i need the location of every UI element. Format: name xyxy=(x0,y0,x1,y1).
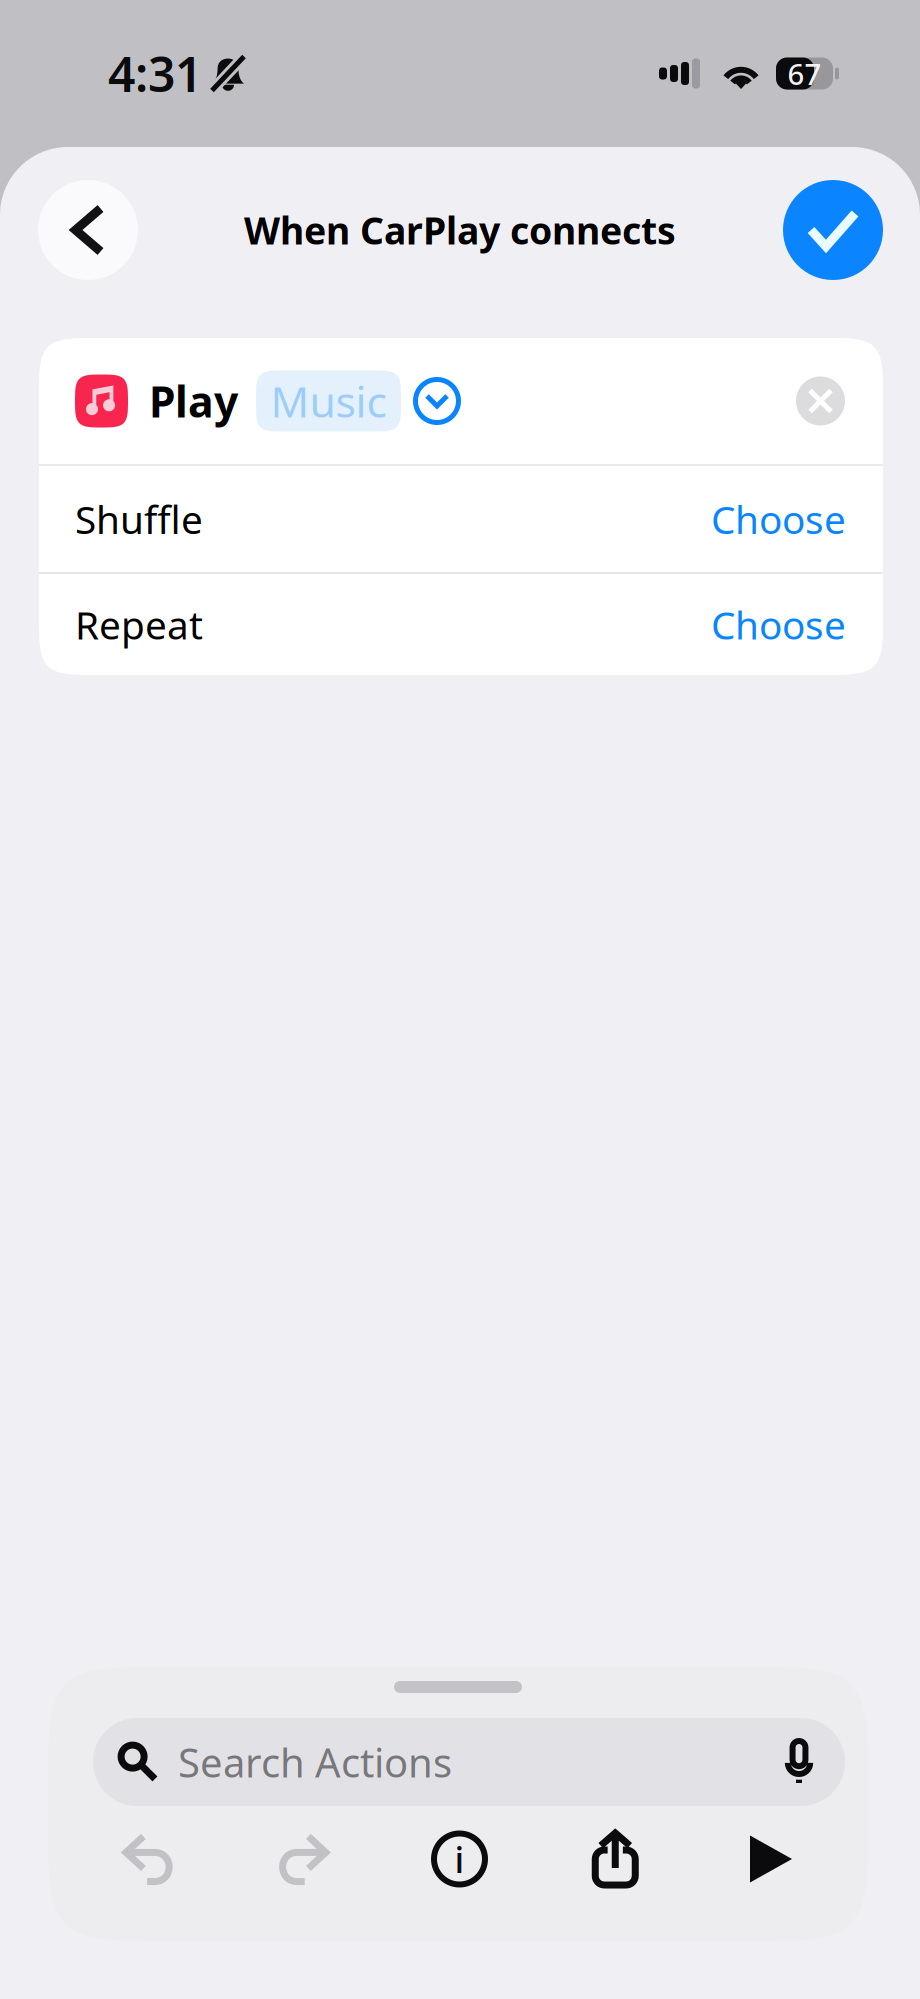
button[interactable]: Shuffle xyxy=(39,466,883,572)
staticText: Shuffle xyxy=(75,493,203,545)
staticText: Choose xyxy=(711,599,846,650)
staticText: Search Actions xyxy=(178,1735,452,1788)
button[interactable]: Share xyxy=(561,1814,669,1904)
staticText: Music xyxy=(270,373,386,429)
button[interactable]: Details xyxy=(405,1814,513,1904)
staticText: Play xyxy=(149,373,238,429)
staticText: 67 xyxy=(787,54,821,93)
button[interactable]: Redo xyxy=(250,1814,358,1904)
button[interactable]: Show more options xyxy=(413,377,461,425)
button[interactable]: Undo xyxy=(94,1814,202,1904)
button[interactable]: Done xyxy=(783,180,883,280)
staticText: Choose xyxy=(711,493,846,545)
staticText: Repeat xyxy=(75,599,203,650)
staticText: When CarPlay connects xyxy=(244,205,676,255)
staticText: i xyxy=(454,1835,464,1883)
button[interactable]: Back xyxy=(38,180,138,280)
button[interactable]: Repeat xyxy=(39,574,883,675)
staticText: 4:31 xyxy=(108,42,202,105)
button[interactable]: Remove action xyxy=(796,376,845,425)
button[interactable]: Run xyxy=(717,1814,825,1904)
button[interactable]: Search Actions xyxy=(93,1718,845,1806)
